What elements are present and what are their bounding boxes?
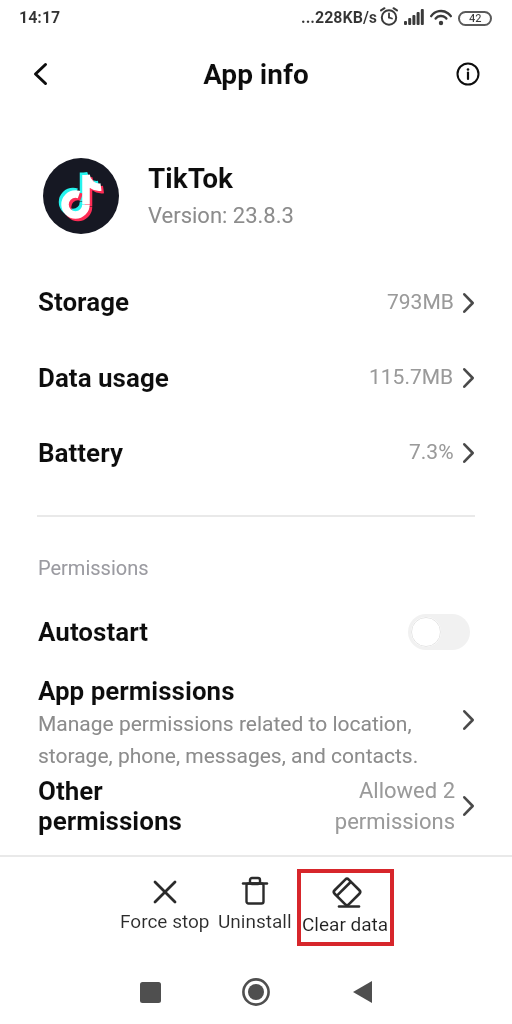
button[interactable]: Data usage [0,340,512,415]
button[interactable] [330,962,394,1022]
button[interactable]: Uninstall [207,866,303,942]
button[interactable] [448,54,488,94]
staticText: 14:17 [19,8,61,27]
button[interactable] [118,962,182,1022]
staticText: Permissions [38,556,149,579]
staticText: App permissions [38,676,235,706]
staticText: App info [0,58,512,91]
staticText: Storage [38,287,130,317]
staticText: TikTok [148,162,233,195]
button[interactable] [224,962,288,1022]
button[interactable] [18,54,62,94]
staticText: Uninstall [218,910,292,932]
button[interactable]: Autostart [0,603,512,661]
button[interactable]: Clear data [297,869,394,946]
staticText: Other permissions [38,776,182,836]
staticText: Force stop [120,910,210,932]
staticText: ...228KB/s [301,8,378,27]
staticText: 7.3% [409,440,454,465]
button[interactable]: App permissions [0,665,512,775]
staticText: Data usage [38,363,169,393]
staticText: 793MB [387,290,454,315]
button[interactable]: Storage [0,265,512,339]
staticText: Clear data [302,913,389,935]
staticText: Battery [38,438,123,468]
staticText: Allowed 2 permissions [334,778,455,834]
staticText: Version: 23.8.3 [148,203,294,229]
button[interactable]: Other permissions [0,766,512,846]
staticText: 42 [469,12,482,25]
staticText: Autostart [38,617,149,647]
button[interactable]: Force stop [113,866,217,942]
staticText: Manage permissions related to location, … [38,712,419,768]
button[interactable]: Battery [0,415,512,490]
staticText: 115.7MB [369,365,454,390]
